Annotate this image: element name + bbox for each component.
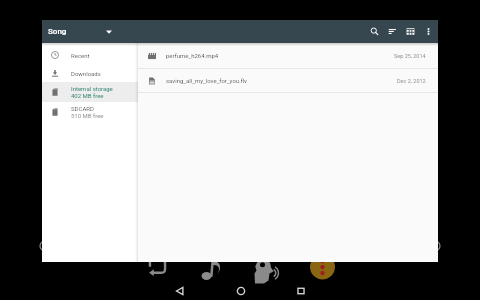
button[interactable]: SDCARD (42, 102, 138, 122)
button[interactable]: perfume_h264.mp4 (138, 43, 438, 68)
button[interactable]: Recent (42, 46, 138, 64)
staticText: 510 MB free (71, 112, 104, 119)
staticText: saving_all_my_love_for_you.flv (166, 77, 248, 84)
button[interactable]: Grid view (401, 20, 419, 43)
button[interactable]: Text to speech (254, 258, 279, 283)
button[interactable]: More options (419, 20, 437, 43)
button[interactable]: Internal storage (42, 82, 138, 102)
staticText: Internal storage (71, 85, 113, 92)
staticText: Downloads (71, 70, 101, 77)
staticText: SDCARD (71, 105, 94, 112)
button[interactable]: Repeat (147, 258, 168, 279)
button[interactable]: Search (365, 20, 383, 43)
button[interactable]: Home (234, 284, 247, 297)
button[interactable]: Music (200, 257, 225, 282)
staticText: Dec 2, 2012 (397, 78, 426, 84)
staticText: 402 MB free (71, 92, 104, 99)
button[interactable]: Sort (383, 20, 401, 43)
button[interactable]: Shortcut (436, 241, 446, 251)
staticText: Recent (71, 52, 90, 59)
staticText: Song (48, 27, 67, 36)
button[interactable]: saving_all_my_love_for_you.flv (138, 69, 438, 92)
button[interactable]: Back (173, 284, 186, 297)
staticText: perfume_h264.mp4 (166, 52, 219, 59)
button[interactable]: Recents (294, 284, 307, 297)
button[interactable]: Shortcut (34, 241, 44, 251)
button[interactable]: App (310, 255, 335, 280)
button[interactable]: Song (42, 20, 118, 43)
staticText: Sep 25, 2014 (394, 53, 426, 59)
button[interactable]: Downloads (42, 64, 138, 82)
